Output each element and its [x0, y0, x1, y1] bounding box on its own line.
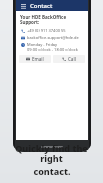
staticText: Your HDE BackOffice Support:: [20, 14, 86, 25]
button[interactable]: Open navigation menu: [19, 2, 27, 10]
staticText: Monday - Friday: [27, 42, 58, 47]
staticText: Email: [32, 56, 44, 62]
staticText: Quickly find the right: [6, 142, 97, 164]
staticText: 09:00 o'clock - 18:00 o'clock: [27, 47, 78, 52]
button[interactable]: backoffice-support@hde.de: [20, 35, 84, 40]
button[interactable]: +49 (0) 911 37400 55: [20, 28, 84, 33]
staticText: +49 (0) 911 37400 55: [27, 28, 66, 33]
staticText: Call: [68, 56, 76, 62]
button[interactable]: Email: [19, 55, 51, 63]
staticText: backoffice-support@hde.de: [27, 35, 79, 40]
staticText: contact.: [33, 165, 71, 177]
button[interactable]: Monday - Friday: [20, 42, 84, 52]
button[interactable]: Call: [53, 55, 85, 63]
staticText: Contact: [30, 2, 53, 10]
